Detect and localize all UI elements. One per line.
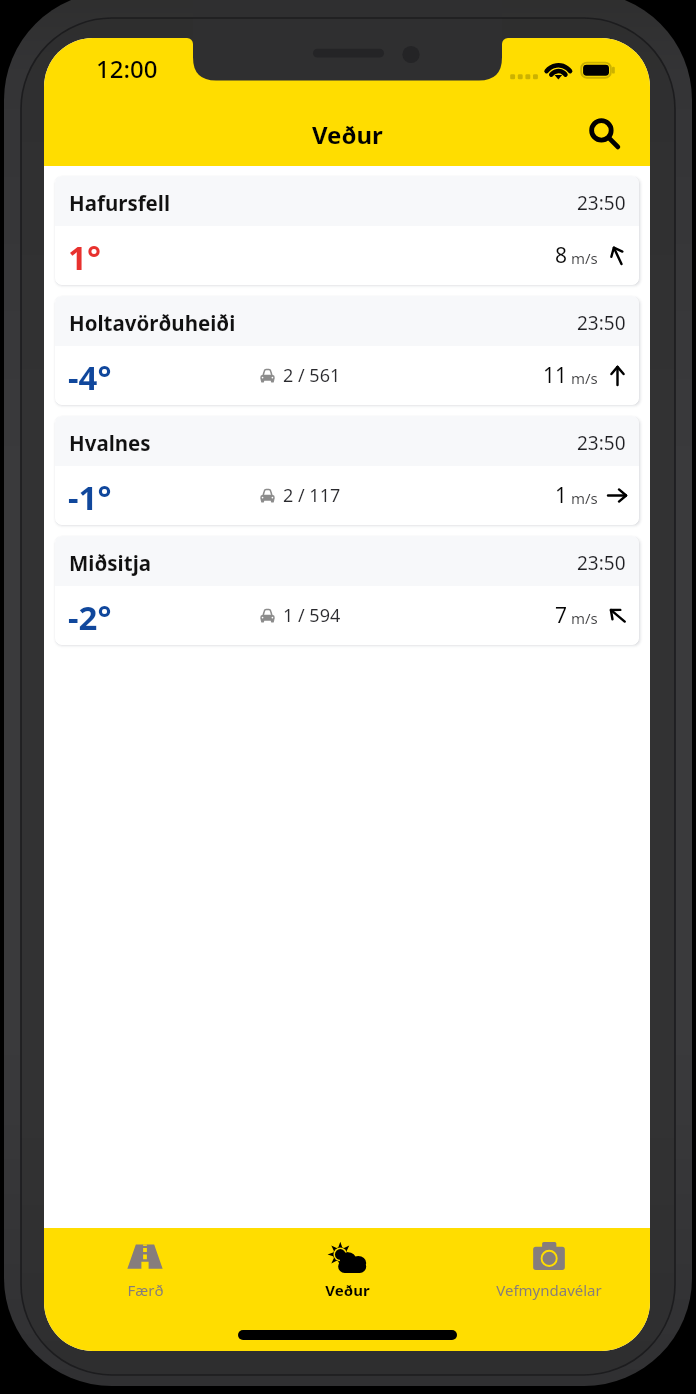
staticText: 1 xyxy=(555,481,568,510)
button[interactable]: Hvalnes xyxy=(55,416,639,525)
staticText: 2 / 561 xyxy=(283,363,341,388)
button[interactable]: Search xyxy=(580,109,628,157)
staticText: 2 / 117 xyxy=(283,483,341,508)
staticText: -4° xyxy=(68,355,112,400)
staticText: Veður xyxy=(325,1280,370,1300)
staticText: 23:50 xyxy=(577,550,626,576)
staticText: 7 xyxy=(555,601,568,630)
staticText: m/s xyxy=(571,368,598,388)
button[interactable]: Holtavörðuheiði xyxy=(55,296,639,405)
staticText: m/s xyxy=(571,608,598,628)
staticText: Hvalnes xyxy=(69,429,151,457)
button[interactable]: Veður xyxy=(246,1228,448,1323)
staticText: m/s xyxy=(571,488,598,508)
staticText: -2° xyxy=(68,595,112,640)
staticText: Hafursfell xyxy=(69,189,171,217)
staticText: Færð xyxy=(127,1280,164,1300)
staticText: 23:50 xyxy=(577,190,626,216)
staticText: 12:00 xyxy=(96,52,158,85)
staticText: 1 / 594 xyxy=(283,603,341,628)
staticText: 23:50 xyxy=(577,310,626,336)
staticText: 8 xyxy=(555,241,568,270)
button[interactable]: Miðsitja xyxy=(55,536,639,645)
staticText: Vefmyndavélar xyxy=(496,1280,602,1300)
button[interactable]: Vefmyndavélar xyxy=(448,1228,650,1323)
staticText: Miðsitja xyxy=(69,549,152,577)
staticText: 1° xyxy=(68,235,101,280)
button[interactable]: Færð xyxy=(44,1228,246,1323)
staticText: 23:50 xyxy=(577,430,626,456)
staticText: Holtavörðuheiði xyxy=(69,309,236,337)
staticText: 11 xyxy=(543,361,568,390)
button[interactable]: Hafursfell xyxy=(55,176,639,285)
staticText: m/s xyxy=(571,248,598,268)
staticText: -1° xyxy=(68,475,112,520)
staticText: Veður xyxy=(312,118,383,151)
